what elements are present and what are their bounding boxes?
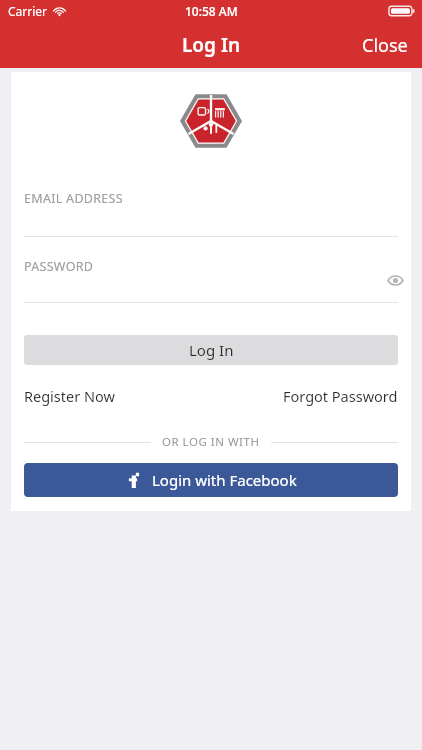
staticText: 10:58 AM xyxy=(185,3,238,19)
button[interactable]: Register Now xyxy=(24,380,115,412)
button[interactable]: Forgot Password xyxy=(283,380,398,412)
staticText: Log In xyxy=(182,32,241,58)
button[interactable]: Log In xyxy=(24,335,398,365)
staticText: Close xyxy=(362,33,408,58)
button[interactable]: Close xyxy=(348,23,422,68)
button[interactable]: PASSWORD xyxy=(11,237,411,302)
staticText: EMAIL ADDRESS xyxy=(24,190,123,207)
staticText: PASSWORD xyxy=(24,258,94,275)
button[interactable]: Show password xyxy=(380,265,411,296)
staticText: Login with Facebook xyxy=(152,470,297,490)
staticText: Carrier xyxy=(8,3,48,19)
button[interactable]: EMAIL ADDRESS xyxy=(11,190,411,236)
staticText: Forgot Password xyxy=(283,386,398,406)
staticText: Log In xyxy=(189,340,234,360)
staticText: Register Now xyxy=(24,386,115,406)
button[interactable]: Login with Facebook xyxy=(24,463,398,497)
staticText: OR LOG IN WITH xyxy=(162,434,260,450)
